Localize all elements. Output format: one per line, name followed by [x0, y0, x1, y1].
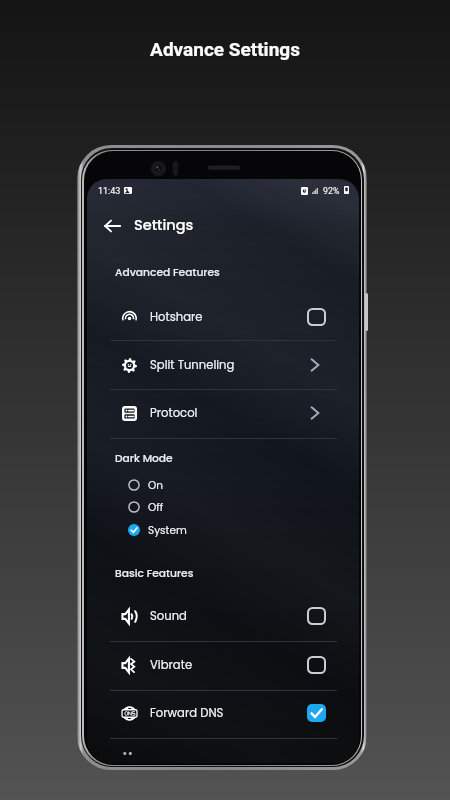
button[interactable]: Hotshare — [110, 303, 326, 331]
staticText: System — [148, 523, 187, 538]
button[interactable]: System — [128, 520, 218, 540]
staticText: Split Tunneling — [150, 357, 235, 373]
staticText: On — [148, 478, 163, 493]
staticText: Off — [148, 500, 164, 515]
staticText: Advance Settings — [0, 38, 450, 60]
button[interactable]: Vibrate — [110, 651, 326, 679]
staticText: Advanced Features — [115, 265, 220, 280]
staticText: Protocol — [150, 405, 198, 421]
button[interactable]: On — [128, 475, 218, 495]
button[interactable]: Protocol — [110, 399, 326, 427]
staticText: Settings — [134, 215, 194, 235]
button[interactable]: Forward DNS — [110, 699, 326, 727]
staticText: Basic Features — [115, 566, 194, 581]
staticText: Dark Mode — [115, 451, 173, 466]
staticText: 11:43 — [98, 186, 121, 197]
staticText: Sound — [150, 608, 187, 624]
staticText: Hotshare — [150, 309, 203, 325]
staticText: Forward DNS — [150, 705, 224, 721]
button[interactable]: Off — [128, 497, 218, 517]
button[interactable]: Sound — [110, 602, 326, 630]
button[interactable]: Split Tunneling — [110, 351, 326, 379]
staticText: 92% — [323, 186, 340, 196]
button[interactable]: Back — [98, 212, 126, 240]
staticText: Vibrate — [150, 657, 193, 673]
